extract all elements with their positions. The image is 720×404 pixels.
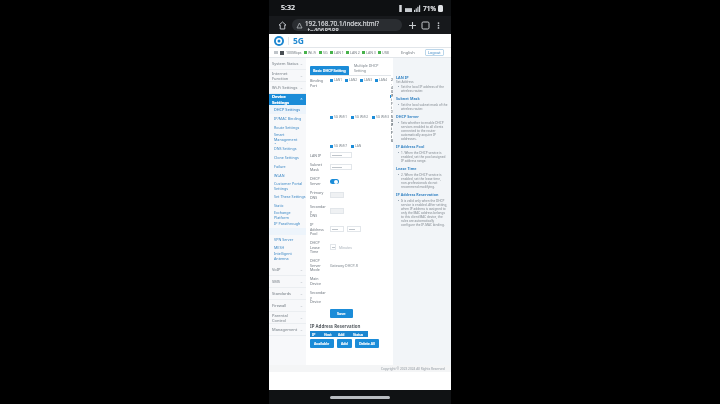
button[interactable]: New tab xyxy=(406,19,419,32)
staticText: ⌄ xyxy=(300,316,303,320)
staticText: ⌄ xyxy=(300,292,303,296)
staticText: DHCP Server xyxy=(396,114,419,119)
button[interactable] xyxy=(330,179,339,184)
staticText: Set the local subnet mask of the wireles… xyxy=(401,103,448,111)
staticText: DHCP Server xyxy=(310,176,321,186)
staticText: LAN2 xyxy=(349,78,357,82)
staticText: ⌄ xyxy=(300,268,303,272)
staticText: ⌄ xyxy=(300,86,303,90)
button[interactable]: WLAN xyxy=(269,171,306,180)
button[interactable]: Parental Control xyxy=(269,312,306,323)
staticText: Smart Management Account xyxy=(274,132,306,144)
staticText: LAN IP xyxy=(310,153,322,158)
staticText: Main Device xyxy=(310,276,322,286)
staticText: System Status xyxy=(272,61,300,66)
button[interactable]: Tabs xyxy=(419,19,432,32)
staticText: Gateway DHCP-R xyxy=(330,263,358,268)
staticText: VPN Server xyxy=(274,237,294,242)
button[interactable]: Route Settings xyxy=(269,123,306,132)
staticText: Lease Time xyxy=(396,166,417,171)
staticText: VoIP xyxy=(272,267,300,272)
button[interactable]: IP Passthrough xyxy=(269,219,306,228)
button[interactable]: More options xyxy=(432,19,444,31)
button[interactable]: Standards xyxy=(269,288,306,299)
staticText: Primary DNS xyxy=(310,190,324,200)
staticText: IP Address Reservation xyxy=(396,192,439,197)
staticText: Copyright © 2023 2024 All Rights Reserve… xyxy=(381,367,445,371)
staticText: Route Settings xyxy=(274,125,300,130)
staticText: 5G WiFi3 xyxy=(376,115,390,119)
button[interactable]: Failure xyxy=(269,162,306,171)
button[interactable]: Customer Portal Settings xyxy=(269,180,306,192)
staticText: Multiple DHCP Setting xyxy=(354,63,388,73)
button[interactable]: Management xyxy=(269,324,306,335)
button[interactable]: System Status xyxy=(269,58,306,69)
button[interactable]: Save xyxy=(330,309,353,318)
button[interactable]: Intelligent Antenna Control xyxy=(269,251,306,262)
button[interactable]: Wi-Fi Settings xyxy=(269,82,306,93)
staticText: IP Address Reservation xyxy=(310,323,361,329)
button[interactable]: Logout xyxy=(425,49,444,56)
staticText: MESH xyxy=(274,245,285,250)
button[interactable]: Multiple DHCP Setting xyxy=(351,61,391,75)
button[interactable]: SMS xyxy=(269,276,306,287)
staticText: LAN3 xyxy=(364,78,372,82)
staticText: Subnet Mask xyxy=(310,162,322,172)
staticText: 2. When the DHCP service is enabled, set… xyxy=(401,173,448,189)
button[interactable]: Clone Settings xyxy=(269,153,306,162)
button[interactable]: Static xyxy=(269,201,306,210)
button[interactable]: Internet Function xyxy=(269,70,306,81)
button[interactable]: VPN Server xyxy=(269,235,306,243)
staticText: Minutes xyxy=(339,245,352,250)
button[interactable]: VoIP xyxy=(269,264,306,275)
staticText: Secondary Device xyxy=(310,290,327,304)
button[interactable]: Exchange Platform xyxy=(269,210,306,219)
staticText: LAN1 xyxy=(334,78,342,82)
staticText: Wi-Fi xyxy=(308,50,317,55)
button[interactable]: Add xyxy=(337,339,352,348)
button[interactable]: MESH xyxy=(269,243,306,251)
staticText: LAN 2 xyxy=(350,50,360,55)
button[interactable]: Smart Management Account xyxy=(269,132,306,144)
button[interactable]: Delete All xyxy=(355,339,379,348)
staticText: IP Passthrough xyxy=(274,221,301,226)
button[interactable]: Set These Settings xyxy=(269,192,306,201)
staticText: ⌄ xyxy=(300,304,303,308)
staticText: LAN 3 xyxy=(366,50,376,55)
button[interactable]: DHCP Settings xyxy=(269,105,306,114)
button[interactable]: Firewall xyxy=(269,300,306,311)
button[interactable]: LAN IP xyxy=(396,75,409,80)
staticText: IP Address Pool xyxy=(396,144,425,149)
staticText: LAN IP xyxy=(396,75,409,80)
staticText: 5:32 xyxy=(281,3,295,13)
button[interactable]: English xyxy=(401,50,415,55)
button[interactable]: Basic DHCP Setting xyxy=(310,66,349,75)
button[interactable]: Home xyxy=(276,19,289,32)
staticText: DHCP Server Mode xyxy=(310,258,321,272)
button[interactable]: DNS Settings xyxy=(269,144,306,153)
staticText: Exchange Platform xyxy=(274,210,306,219)
staticText: Add xyxy=(341,341,348,346)
button[interactable]: 192.168.70.1/index.html?_t=4068588 xyxy=(292,19,402,31)
staticText: Delete All xyxy=(359,341,375,346)
staticText: Wi-Fi Settings xyxy=(272,85,300,90)
button[interactable]: IP/MAC Binding xyxy=(269,114,306,123)
staticText: Intelligent Antenna Control xyxy=(274,251,306,262)
staticText: Static xyxy=(274,203,284,208)
staticText: 71% xyxy=(423,4,436,13)
button[interactable]: Device Settings xyxy=(269,94,306,105)
button[interactable]: Available xyxy=(310,339,334,348)
staticText: 100Mbps xyxy=(286,50,302,55)
staticText: Device Settings xyxy=(272,94,300,105)
